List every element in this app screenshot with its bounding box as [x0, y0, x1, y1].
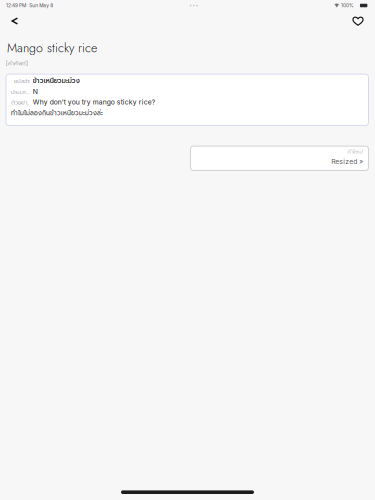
- staticText: ตัวอย่าง:: [11, 98, 30, 107]
- staticText: ทำไมไม่ลองกินข้าวเหนียวมะม่วงล่ะ: [11, 109, 103, 118]
- staticText: คำใหม่: [347, 147, 363, 156]
- staticText: ประเภท:: [11, 88, 30, 96]
- staticText: 12:49 PM: [6, 3, 26, 8]
- staticText: Sun May 8: [29, 3, 53, 8]
- staticText: 100%: [341, 3, 354, 8]
- staticText: แปลว่า:: [14, 77, 30, 85]
- button[interactable]: Add to favorites: [345, 11, 371, 31]
- staticText: Resized »: [331, 157, 363, 166]
- button[interactable]: Back: [2, 11, 28, 31]
- staticText: Why don't you try mango sticky rice?: [33, 98, 155, 106]
- staticText: [คำศัพท์]: [6, 59, 28, 68]
- staticText: N: [33, 87, 38, 96]
- staticText: Mango sticky rice: [7, 39, 97, 57]
- staticText: ข้าวเหนียวมะม่วง: [33, 76, 80, 86]
- button[interactable]: คำใหม่: [190, 146, 368, 170]
